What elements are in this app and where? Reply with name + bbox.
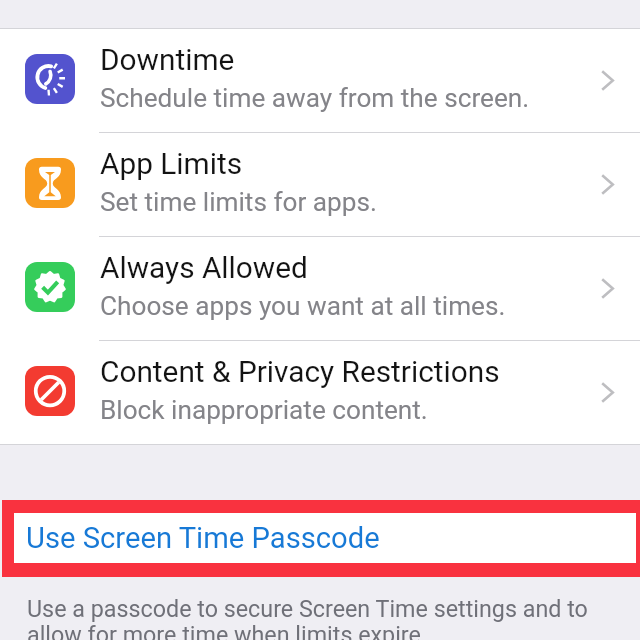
other: Always Allowed icon [25,262,75,312]
other: Open Downtime [601,70,614,91]
staticText: Block inappropriate content. [100,395,428,426]
staticText: Choose apps you want at all times. [100,291,506,322]
button[interactable]: Always Allowed icon [0,237,640,340]
other: Open Content & Privacy Restrictions [601,382,614,403]
other: Content & Privacy Restrictions icon [25,366,75,416]
other: Open Always Allowed [601,278,614,299]
button[interactable]: App Limits icon [0,133,640,236]
staticText: Use a passcode to secure Screen Time set… [27,595,602,640]
staticText: Content & Privacy Restrictions [100,354,500,389]
button[interactable]: Downtime icon [0,29,640,132]
staticText: Set time limits for apps. [100,187,377,218]
staticText: Use Screen Time Passcode [26,521,380,555]
other: Open App Limits [601,174,614,195]
staticText: Downtime [100,42,235,77]
staticText: Always Allowed [100,250,308,285]
other: Downtime icon [25,54,75,104]
button[interactable]: Content & Privacy Restrictions icon [0,341,640,444]
other: App Limits icon [25,158,75,208]
staticText: Schedule time away from the screen. [100,83,530,114]
button[interactable]: Use Screen Time Passcode [14,513,636,563]
staticText: App Limits [100,146,243,181]
